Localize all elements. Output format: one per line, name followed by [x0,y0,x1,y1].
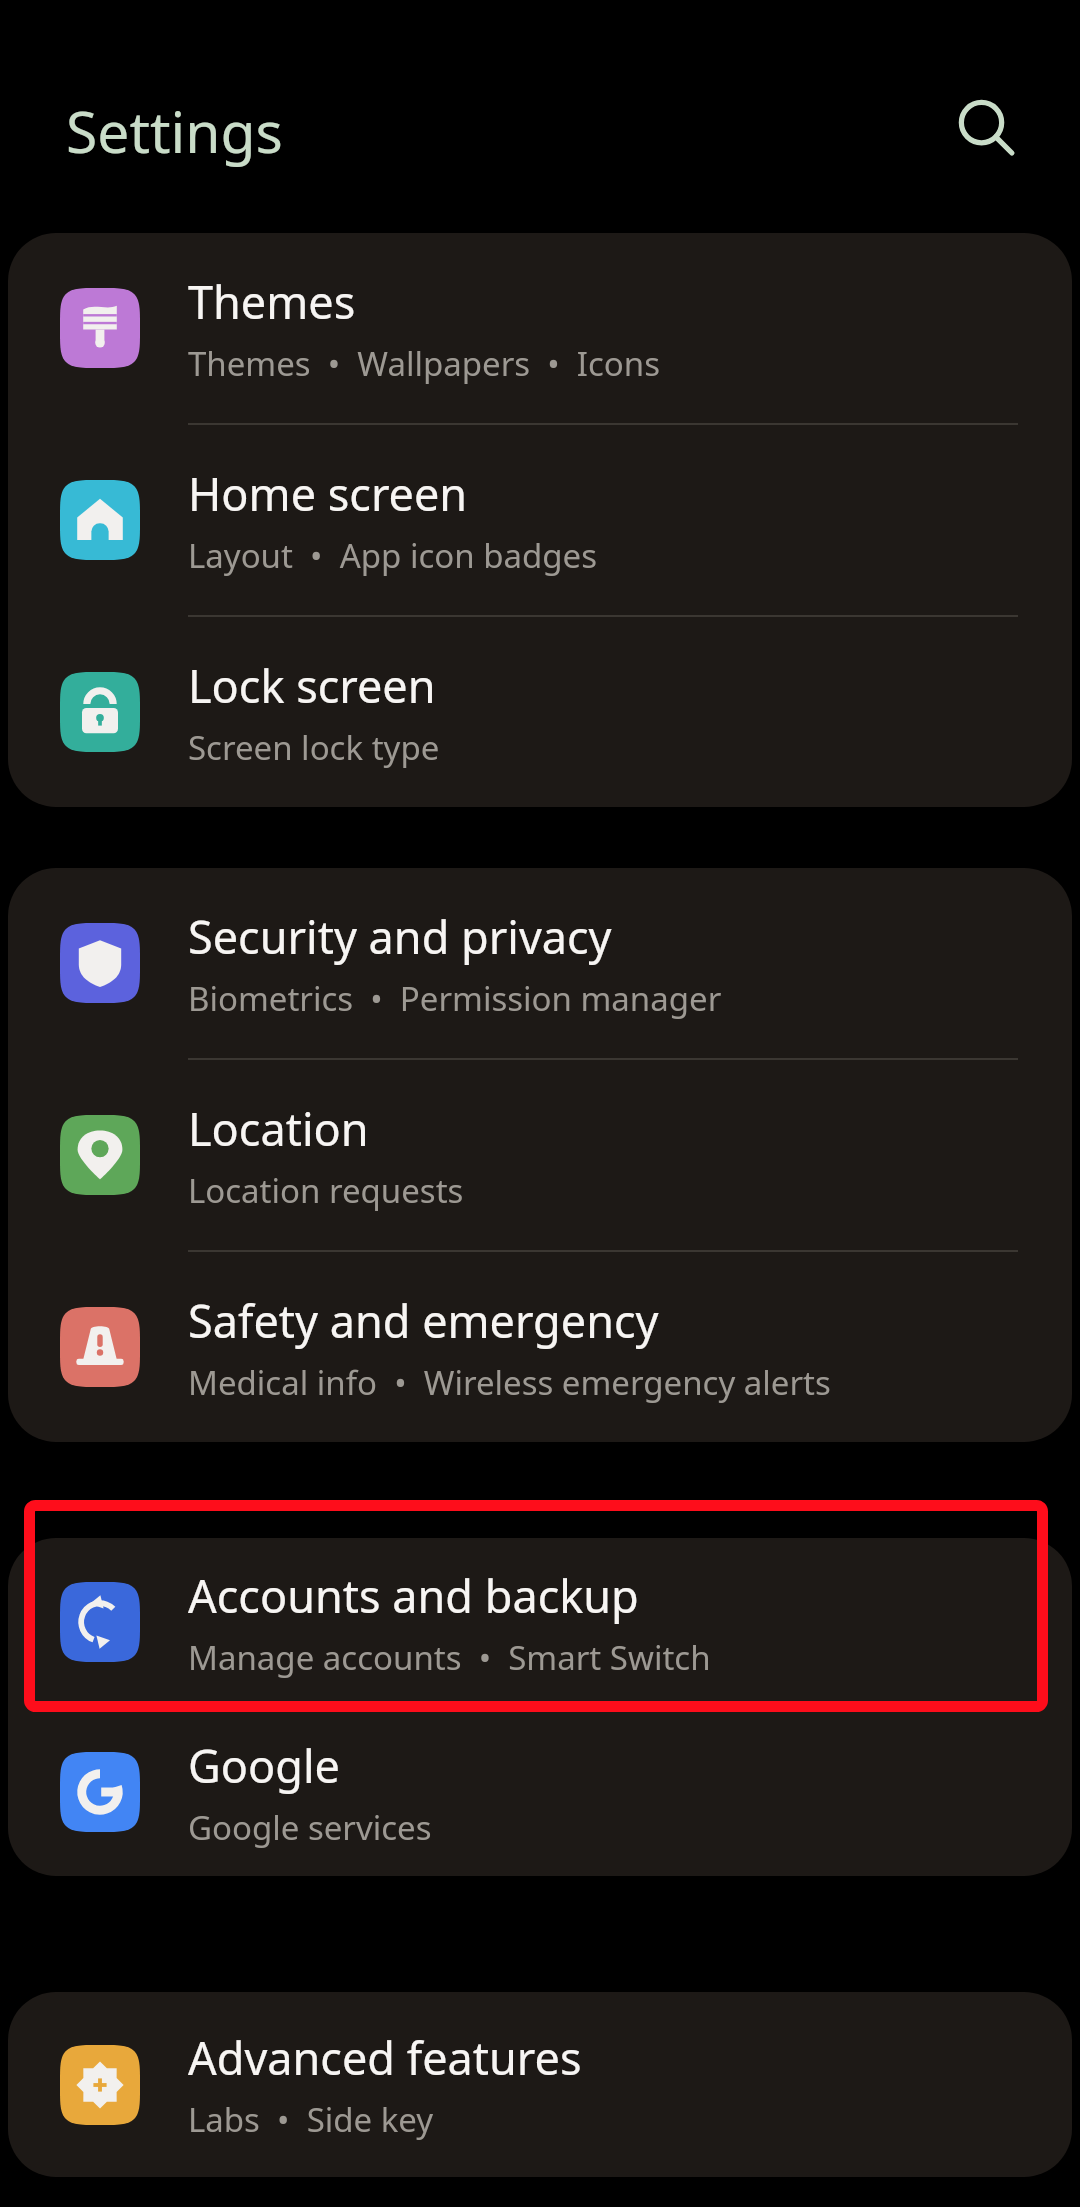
staticText: Settings [66,92,283,170]
staticText: Location [188,1098,369,1159]
button[interactable]: Location [8,1060,1072,1250]
button[interactable]: Search [936,79,1036,179]
staticText: Accounts and backup [188,1565,639,1626]
staticText: Biometrics • Permission manager [188,976,722,1021]
staticText: Google [188,1735,340,1796]
staticText: Themes • Wallpapers • Icons [188,341,660,386]
staticText: Medical info • Wireless emergency alerts [188,1360,831,1405]
button[interactable]: Google [8,1708,1072,1876]
staticText: Home screen [188,463,468,524]
button[interactable]: Themes [8,233,1072,423]
staticText: Screen lock type [188,725,440,770]
staticText: Lock screen [188,655,436,716]
button[interactable]: Home screen [8,425,1072,615]
staticText: Themes [188,271,356,332]
button[interactable]: Accounts and backup [8,1538,1072,1706]
staticText: Location requests [188,1168,464,1213]
staticText: Security and privacy [188,906,612,967]
button[interactable]: Security and privacy [8,868,1072,1058]
button[interactable]: Advanced features [8,1992,1072,2177]
staticText: Safety and emergency [188,1290,659,1351]
staticText: Layout • App icon badges [188,533,598,578]
staticText: Manage accounts • Smart Switch [188,1635,711,1680]
button[interactable]: Safety and emergency [8,1252,1072,1442]
staticText: Labs • Side key [188,2097,434,2142]
button[interactable]: Lock screen [8,617,1072,807]
staticText: Google services [188,1805,432,1850]
staticText: Advanced features [188,2027,582,2088]
